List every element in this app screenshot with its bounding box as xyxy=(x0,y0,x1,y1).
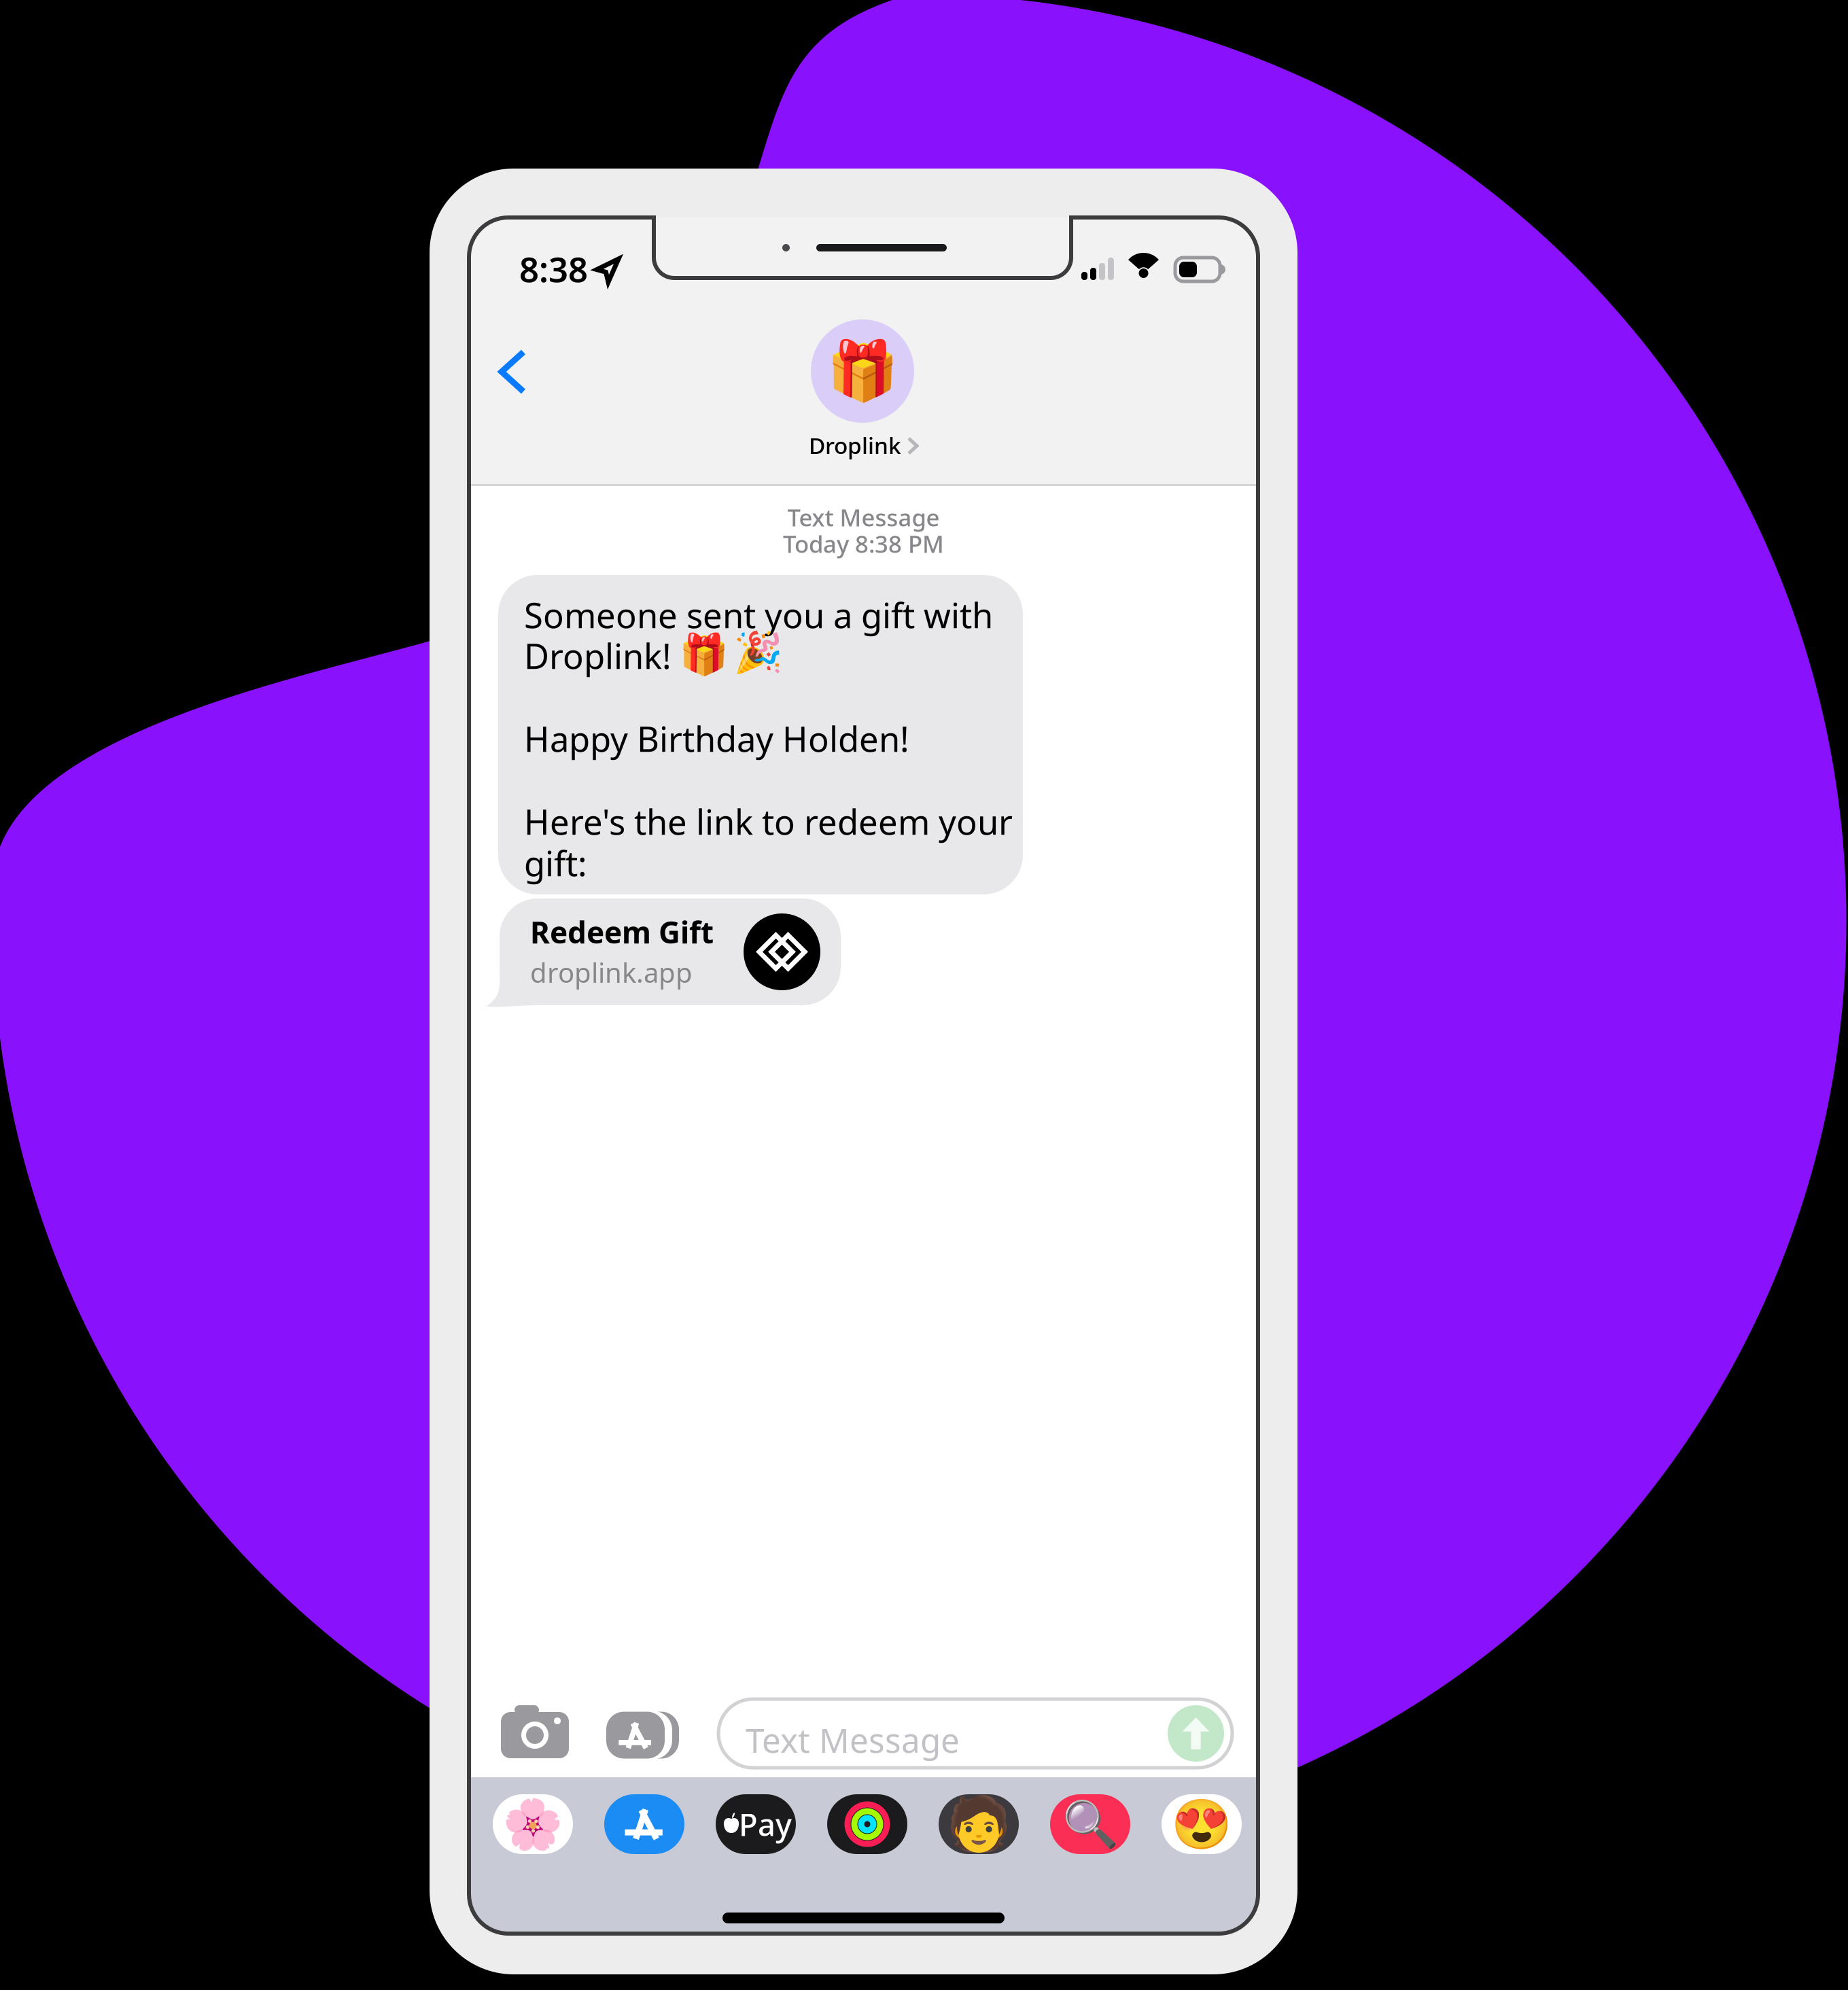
button[interactable]: Back xyxy=(477,328,548,416)
button[interactable]: Camera xyxy=(501,1705,569,1758)
staticText: droplink.app xyxy=(530,954,693,990)
staticText: Text Message xyxy=(787,502,940,533)
button[interactable]: Apple Pay xyxy=(716,1794,796,1854)
staticText: 🌸 xyxy=(502,1796,563,1852)
button[interactable]: Photos xyxy=(493,1794,573,1854)
staticText: 🔍 xyxy=(1062,1798,1118,1850)
staticText: 🎁 xyxy=(679,631,729,677)
button[interactable]: Fitness xyxy=(827,1794,907,1854)
button[interactable]: App Store xyxy=(606,1712,681,1760)
staticText: 🧑 xyxy=(946,1794,1011,1854)
staticText: 🎁 xyxy=(826,338,899,404)
button[interactable]: Memoji xyxy=(939,1794,1019,1854)
staticText: gift: xyxy=(524,840,587,886)
staticText: Redeem Gift xyxy=(530,912,714,952)
staticText: Pay xyxy=(739,1804,792,1845)
button[interactable]: Stickers xyxy=(1162,1794,1242,1854)
staticText: Today 8:38 PM xyxy=(783,528,944,559)
staticText: 🎉 xyxy=(733,629,783,675)
staticText: Droplink xyxy=(809,430,901,460)
staticText: Happy Birthday Holden! xyxy=(524,716,909,761)
staticText: Here's the link to redeem your xyxy=(524,799,1013,844)
button[interactable]: App Store xyxy=(604,1794,684,1854)
staticText: 8:38 xyxy=(519,246,588,292)
staticText: Someone sent you a gift with xyxy=(524,592,993,638)
button[interactable]: #images xyxy=(1050,1794,1130,1854)
staticText: Text Message xyxy=(746,1717,960,1762)
staticText: Droplink! xyxy=(524,633,672,678)
button[interactable]: 🎁 xyxy=(740,319,985,464)
staticText: 😍 xyxy=(1171,1796,1232,1852)
button[interactable]: Send xyxy=(718,1699,1232,1768)
